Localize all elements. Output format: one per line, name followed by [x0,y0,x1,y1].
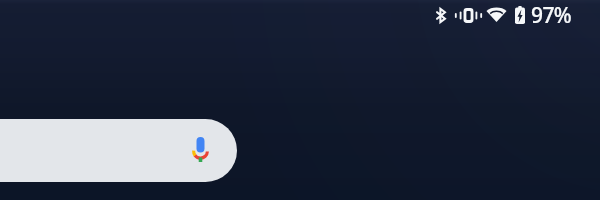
staticText: 97% [531,1,572,30]
button[interactable]: Voice search [0,119,237,182]
button[interactable]: Voice search [192,136,209,162]
